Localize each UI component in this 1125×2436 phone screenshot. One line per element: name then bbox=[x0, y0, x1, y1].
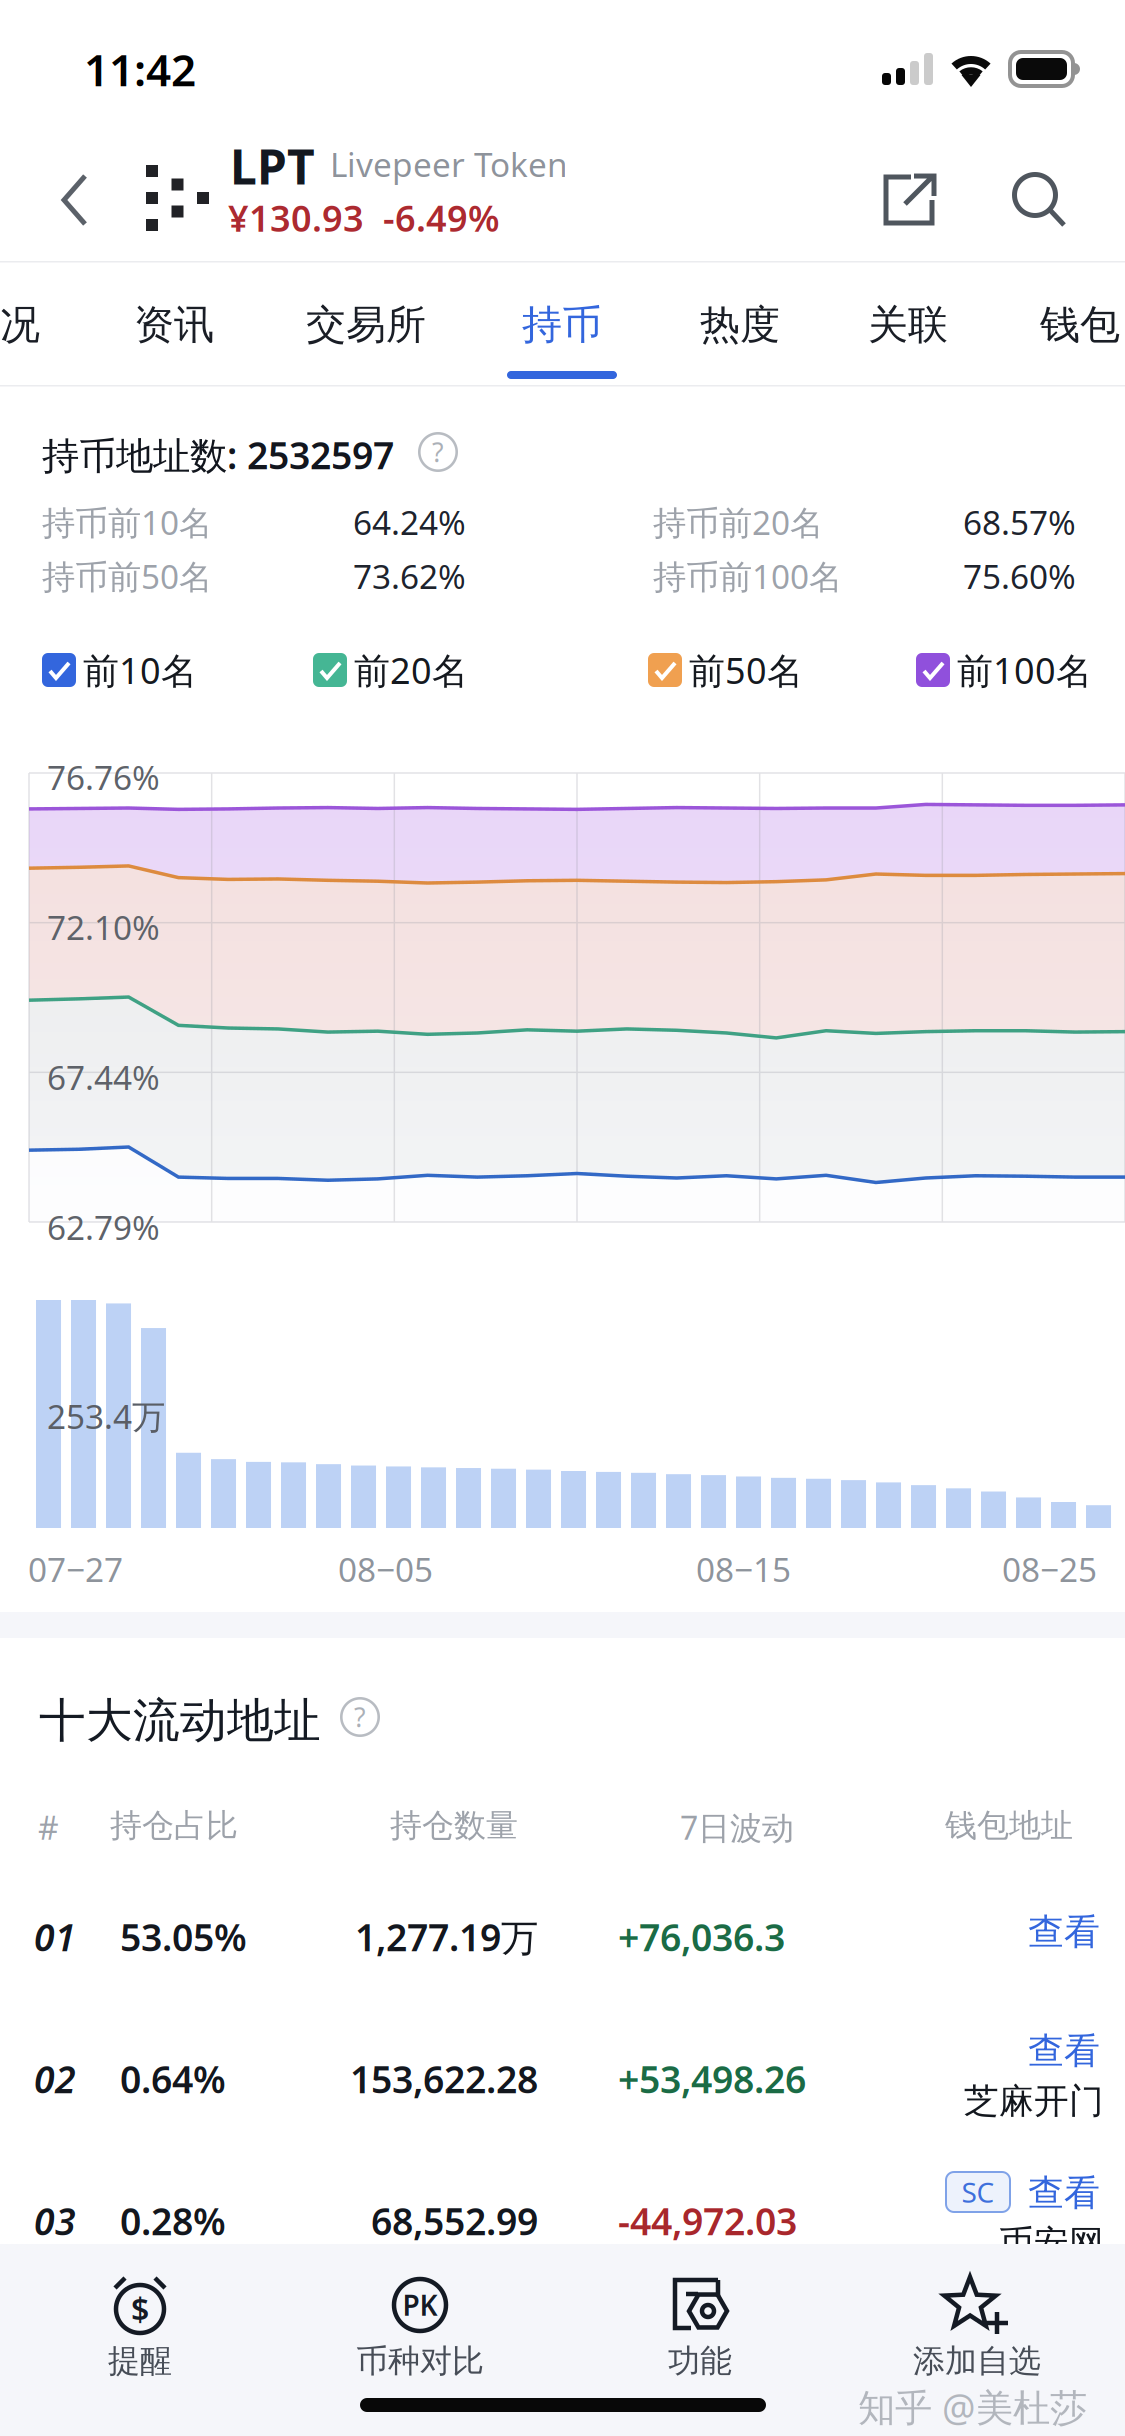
staticText: 况 bbox=[0, 300, 40, 349]
staticText: $ bbox=[131, 2288, 149, 2330]
staticText: 持币前100名 bbox=[653, 554, 842, 598]
staticText: 02 bbox=[34, 2054, 76, 2104]
staticText: PK bbox=[402, 2286, 437, 2324]
staticText: 前50名 bbox=[689, 646, 803, 694]
staticText: 十大流动地址 bbox=[39, 1692, 321, 1749]
button[interactable]: 况 bbox=[0, 264, 140, 386]
staticText: 钱包 bbox=[1040, 300, 1120, 349]
button[interactable]: Search bbox=[990, 140, 1090, 260]
staticText: 资讯 bbox=[134, 300, 214, 349]
staticText: 币种对比 bbox=[356, 2341, 484, 2381]
staticText: 08−25 bbox=[1002, 1547, 1097, 1591]
staticText: 153,622.28 bbox=[350, 2054, 538, 2104]
staticText: +53,498.26 bbox=[618, 2054, 806, 2104]
staticText: 持币前10名 bbox=[42, 500, 212, 544]
button[interactable]: Share bbox=[860, 140, 960, 260]
staticText: # bbox=[38, 1806, 59, 1848]
staticText: 7日波动 bbox=[680, 1806, 794, 1848]
button[interactable]: $ bbox=[20, 2276, 260, 2398]
staticText: 72.10% bbox=[47, 905, 160, 949]
button[interactable]: Back bbox=[20, 140, 130, 260]
button[interactable]: 查看 bbox=[1022, 1911, 1106, 1953]
staticText: 08−05 bbox=[338, 1547, 433, 1591]
staticText: 07−27 bbox=[28, 1547, 123, 1591]
staticText: 64.24% bbox=[353, 500, 466, 544]
staticText: 持币前50名 bbox=[42, 554, 212, 598]
button[interactable]: 交易所 bbox=[246, 264, 486, 386]
staticText: 交易所 bbox=[306, 300, 426, 349]
staticText: -6.49% bbox=[383, 194, 500, 242]
staticText: 添加自选 bbox=[913, 2341, 1041, 2381]
button[interactable]: 添加自选 bbox=[857, 2276, 1097, 2398]
staticText: 知乎 @美杜莎 bbox=[858, 2382, 1087, 2432]
staticText: +76,036.3 bbox=[618, 1912, 785, 1962]
staticText: 币安网 bbox=[999, 2222, 1104, 2265]
staticText: -44,972.03 bbox=[618, 2196, 797, 2246]
staticText: 68,552.99 bbox=[371, 2196, 538, 2246]
staticText: 53.05% bbox=[120, 1912, 247, 1962]
staticText: 03 bbox=[34, 2196, 76, 2246]
staticText: 热度 bbox=[700, 300, 780, 349]
button[interactable]: 查看 bbox=[1022, 2172, 1106, 2214]
staticText: 253.4万 bbox=[47, 1394, 165, 1438]
button[interactable]: 前20名 bbox=[313, 645, 468, 695]
staticText: 持仓占比 bbox=[110, 1806, 238, 1845]
staticText: 62.79% bbox=[47, 1205, 160, 1249]
staticText: 持币前20名 bbox=[653, 500, 823, 544]
button[interactable]: 查看 bbox=[1022, 2030, 1106, 2072]
staticText: 持仓数量 bbox=[390, 1806, 518, 1845]
button[interactable]: 前10名 bbox=[42, 645, 197, 695]
staticText: 01 bbox=[34, 1912, 76, 1962]
staticText: 76.76% bbox=[47, 755, 160, 799]
button[interactable]: 关联 bbox=[788, 264, 1028, 386]
staticText: LPT bbox=[230, 134, 315, 198]
button[interactable]: 前100名 bbox=[916, 645, 1092, 695]
staticText: 功能 bbox=[668, 2341, 732, 2381]
staticText: 查看 bbox=[1028, 1910, 1100, 1954]
staticText: ? bbox=[354, 1699, 366, 1735]
staticText: 前10名 bbox=[83, 646, 197, 694]
staticText: 关联 bbox=[868, 300, 948, 349]
button[interactable]: 钱包 bbox=[960, 264, 1125, 386]
staticText: 0.28% bbox=[120, 2196, 226, 2246]
staticText: 08−15 bbox=[696, 1547, 791, 1591]
button[interactable]: 资讯 bbox=[54, 264, 294, 386]
staticText: 前100名 bbox=[957, 646, 1092, 694]
staticText: ¥130.93 bbox=[228, 194, 364, 242]
staticText: 提醒 bbox=[108, 2341, 172, 2381]
staticText: 73.62% bbox=[353, 554, 466, 598]
staticText: 75.60% bbox=[963, 554, 1076, 598]
button[interactable]: 功能 bbox=[580, 2276, 820, 2398]
button[interactable]: PK bbox=[300, 2276, 540, 2398]
staticText: 钱包地址 bbox=[945, 1806, 1073, 1845]
staticText: 前20名 bbox=[354, 646, 468, 694]
button[interactable]: 持币 bbox=[442, 264, 682, 386]
button[interactable]: 热度 bbox=[620, 264, 860, 386]
staticText: SC bbox=[961, 2173, 994, 2211]
staticText: 0.64% bbox=[120, 2054, 226, 2104]
button[interactable]: 前50名 bbox=[648, 645, 803, 695]
staticText: 持币地址数: 2532597 bbox=[42, 430, 394, 480]
staticText: 11:42 bbox=[84, 40, 196, 98]
staticText: 68.57% bbox=[963, 500, 1076, 544]
staticText: 1,277.19万 bbox=[355, 1912, 538, 1962]
staticText: 芝麻开门 bbox=[964, 2080, 1104, 2123]
staticText: 持币 bbox=[522, 300, 602, 349]
staticText: 查看 bbox=[1028, 2029, 1100, 2073]
staticText: Livepeer Token bbox=[330, 142, 568, 186]
staticText: 67.44% bbox=[47, 1055, 160, 1099]
staticText: ? bbox=[432, 434, 444, 470]
staticText: 查看 bbox=[1028, 2171, 1100, 2215]
